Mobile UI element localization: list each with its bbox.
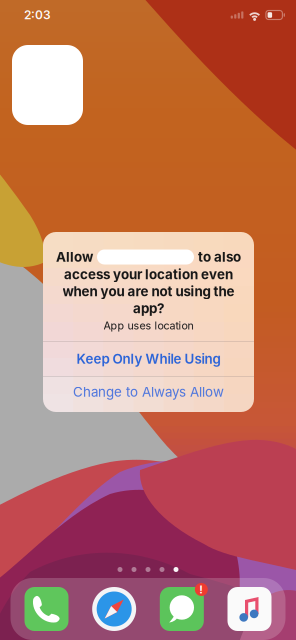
button[interactable]: Messages (160, 587, 204, 631)
staticText: 2:03 (24, 8, 51, 22)
button[interactable]: App (12, 45, 83, 125)
staticText: access your location even (64, 266, 233, 282)
staticText: Change to Always Allow (73, 384, 224, 400)
staticText: app? (133, 300, 164, 316)
button[interactable]: Keep Only While Using (43, 342, 254, 376)
button[interactable]: Change to Always Allow (43, 377, 254, 407)
staticText: when you are not using the (62, 283, 234, 299)
button[interactable]: Safari (92, 587, 136, 631)
staticText: to also (198, 249, 241, 265)
staticText: App uses location (103, 319, 193, 332)
staticText: Keep Only While Using (76, 351, 220, 367)
button[interactable]: Music (227, 587, 271, 631)
staticText: Allow (56, 249, 93, 265)
staticText: ! (199, 583, 203, 596)
button[interactable]: Phone (24, 587, 68, 631)
